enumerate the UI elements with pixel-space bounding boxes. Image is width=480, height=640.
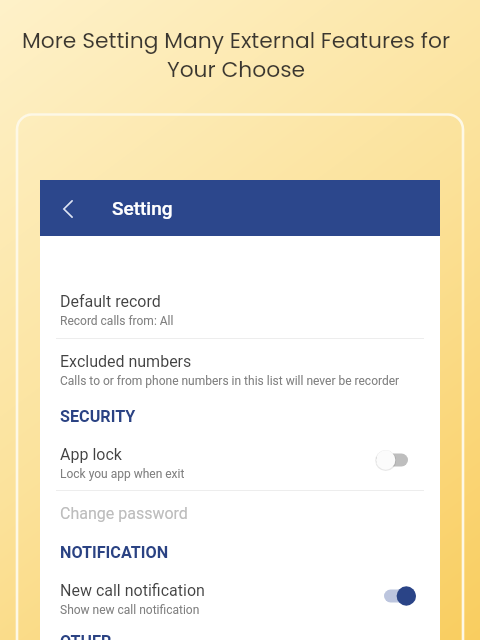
button[interactable]: Switch on bbox=[377, 581, 423, 611]
button[interactable]: App lock bbox=[40, 439, 440, 487]
button[interactable]: OTHER bbox=[40, 628, 440, 640]
button[interactable]: New call notification bbox=[40, 575, 440, 623]
staticText: Excluded numbers bbox=[60, 352, 192, 371]
button[interactable]: SECURITY bbox=[40, 403, 440, 429]
staticText: Change password bbox=[60, 504, 188, 523]
staticText: New call notification bbox=[60, 581, 205, 600]
staticText: OTHER bbox=[60, 632, 112, 640]
staticText: Lock you app when exit bbox=[60, 467, 185, 481]
button[interactable]: Back bbox=[40, 180, 86, 236]
staticText: Show new call notification bbox=[60, 603, 200, 617]
staticText: Default record bbox=[60, 292, 161, 311]
staticText: NOTIFICATION bbox=[60, 543, 169, 562]
button[interactable]: Switch off bbox=[369, 445, 415, 475]
staticText: Calls to or from phone numbers in this l… bbox=[60, 374, 400, 388]
staticText: Record calls from: All bbox=[60, 314, 174, 328]
button[interactable]: Back bbox=[40, 180, 440, 236]
button[interactable]: NOTIFICATION bbox=[40, 539, 440, 565]
staticText: Setting bbox=[112, 197, 173, 219]
button[interactable]: Default record bbox=[40, 286, 440, 334]
staticText: More Setting Many External Features for … bbox=[0, 25, 476, 85]
button[interactable]: Excluded numbers bbox=[40, 346, 440, 394]
button[interactable]: Change password bbox=[40, 498, 440, 528]
staticText: SECURITY bbox=[60, 407, 136, 426]
staticText: App lock bbox=[60, 445, 122, 464]
